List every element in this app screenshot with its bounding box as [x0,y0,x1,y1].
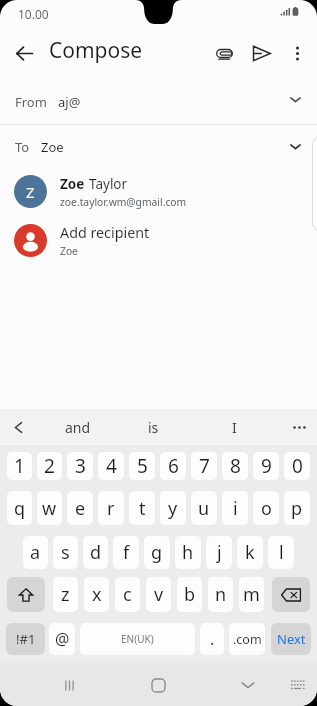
button[interactable]: More options [280,36,314,70]
button[interactable]: Home [142,669,174,701]
button[interactable]: v [146,577,171,612]
button[interactable]: r [98,491,124,525]
staticText: EN(UK) [121,632,154,646]
button[interactable]: .com [229,623,265,655]
staticText: 10.00 [18,6,49,22]
staticText: j [217,540,222,565]
staticText: Next [277,630,306,648]
button[interactable]: t [129,491,155,525]
button[interactable]: 3 [67,452,93,480]
staticText: I [232,418,237,437]
button[interactable]: Previous suggestions [5,414,31,440]
button[interactable]: Switch keyboard [282,669,314,701]
button[interactable]: l [268,536,294,569]
button[interactable]: !#1 [6,623,45,655]
button[interactable]: Back [6,35,42,71]
button[interactable]: EN(UK) [80,623,195,655]
staticText: @ [55,628,70,650]
staticText: n [215,582,227,607]
staticText: is [148,418,159,437]
button[interactable]: Shift [7,577,45,612]
button[interactable]: w [37,491,62,525]
button[interactable]: b [177,577,202,612]
staticText: aj@ [58,93,81,111]
button[interactable]: g [144,536,170,569]
button[interactable]: Send [242,34,280,72]
staticText: From [15,93,47,111]
button[interactable]: n [208,577,233,612]
staticText: 6 [168,453,179,479]
staticText: 5 [137,453,148,479]
button[interactable]: Next [271,623,311,655]
button[interactable]: I [221,409,247,445]
button[interactable]: Add recipient [0,217,317,264]
button[interactable]: 7 [191,452,217,480]
button[interactable]: 0 [284,452,310,480]
button[interactable]: z [53,577,78,612]
button[interactable]: @ [49,623,75,655]
button[interactable]: k [237,536,263,569]
button[interactable]: To [0,125,317,168]
staticText: p [291,496,303,521]
button[interactable]: Recents [53,669,85,701]
button[interactable]: . [200,623,224,655]
button[interactable]: 5 [129,452,155,480]
staticText: d [90,540,102,565]
button[interactable]: 4 [98,452,124,480]
button[interactable]: Backspace [272,577,310,612]
staticText: 9 [261,453,272,479]
staticText: .com [233,631,262,648]
staticText: g [151,540,163,565]
button[interactable]: j [206,536,232,569]
button[interactable]: More suggestions [286,414,312,440]
staticText: Add recipient [60,223,150,242]
staticText: l [279,540,284,565]
button[interactable]: o [253,491,279,525]
staticText: y [168,496,178,521]
button[interactable]: From [0,78,317,125]
button[interactable]: 1 [7,452,32,480]
staticText: s [61,540,70,565]
staticText: f [123,540,130,565]
staticText: Zoe [60,175,85,193]
button[interactable]: q [7,491,32,525]
staticText: k [245,540,255,565]
staticText: b [184,582,196,607]
button[interactable]: Z [0,168,317,215]
button[interactable]: a [23,536,48,569]
staticText: . [210,628,215,650]
button[interactable]: u [191,491,217,525]
button[interactable]: 8 [222,452,248,480]
button[interactable]: 2 [37,452,62,480]
staticText: v [154,582,164,607]
button[interactable]: y [160,491,186,525]
button[interactable]: and [54,409,102,445]
button[interactable]: s [53,536,78,569]
button[interactable]: is [136,409,170,445]
staticText: Zoe [60,244,78,258]
button[interactable]: 6 [160,452,186,480]
staticText: 8 [230,453,241,479]
button[interactable]: c [115,577,140,612]
button[interactable]: i [222,491,248,525]
staticText: 2 [44,453,55,479]
staticText: m [243,582,260,607]
button[interactable]: Hide keyboard [232,669,264,701]
staticText: t [139,496,146,521]
button[interactable]: x [84,577,109,612]
staticText: q [14,496,26,521]
button[interactable]: p [284,491,310,525]
staticText: Compose [49,36,143,65]
button[interactable]: 9 [253,452,279,480]
button[interactable]: m [239,577,264,612]
staticText: x [92,582,102,607]
staticText: Z [26,182,35,202]
button[interactable]: d [83,536,108,569]
staticText: Taylor [89,175,128,193]
staticText: 3 [75,453,86,479]
button[interactable]: f [113,536,139,569]
button[interactable]: Attach file [206,35,242,71]
staticText: e [75,496,86,521]
button[interactable]: h [175,536,201,569]
button[interactable]: e [67,491,93,525]
